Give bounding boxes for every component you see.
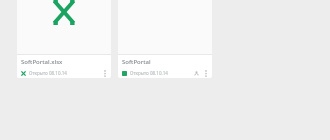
button[interactable]: SoftPortal.xlsx bbox=[17, 0, 111, 78]
staticText: SoftPortal.xlsx bbox=[21, 58, 63, 66]
staticText: Открыто 08.10.14 bbox=[130, 70, 168, 76]
button[interactable]: More options bbox=[100, 68, 110, 78]
button[interactable]: SoftPortal bbox=[118, 0, 212, 78]
staticText: SoftPortal bbox=[122, 58, 151, 66]
staticText: Открыто 08.10.14 bbox=[29, 70, 67, 76]
button[interactable]: Shared bbox=[192, 69, 200, 77]
button[interactable]: More options bbox=[201, 68, 211, 78]
